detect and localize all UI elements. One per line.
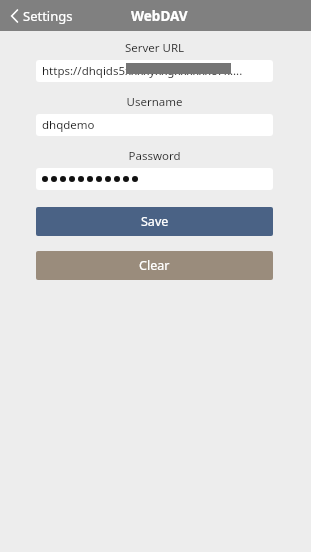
staticText: Save xyxy=(141,213,169,230)
staticText: https://dhqids5xxxxyxxgxxxxxxe7k.... xyxy=(42,63,243,79)
button[interactable] xyxy=(36,168,273,190)
button[interactable]: https://dhqids5xxxxyxxgxxxxxxe7k.... xyxy=(36,60,273,82)
button[interactable]: dhqdemo xyxy=(36,114,273,136)
staticText: WebDAV xyxy=(131,7,188,25)
button[interactable]: Save xyxy=(36,207,273,236)
button[interactable]: Settings xyxy=(0,0,83,31)
staticText: Settings xyxy=(23,7,73,25)
staticText: Server URL xyxy=(36,40,273,56)
button[interactable]: Clear xyxy=(36,251,273,280)
staticText: Clear xyxy=(139,257,170,274)
staticText: Username xyxy=(36,94,273,110)
staticText: Password xyxy=(36,148,273,164)
staticText: dhqdemo xyxy=(42,117,95,133)
